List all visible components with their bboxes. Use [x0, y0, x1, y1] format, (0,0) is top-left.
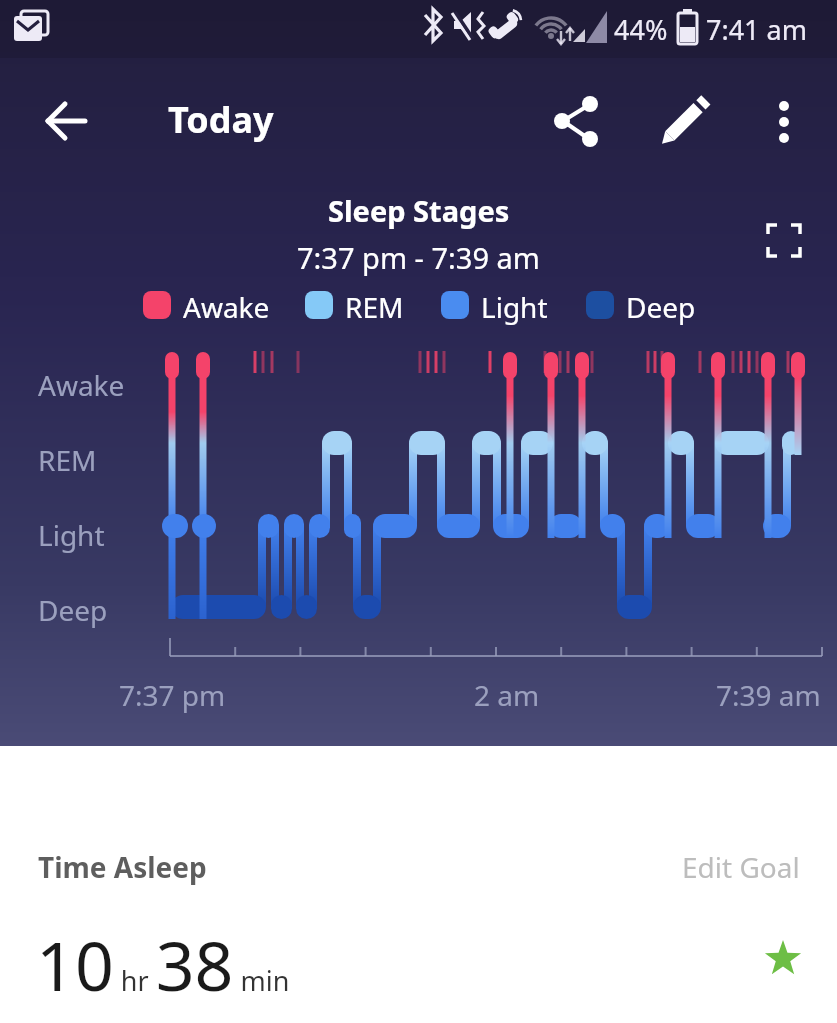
button[interactable] [762, 96, 806, 140]
staticText: Today [168, 95, 274, 144]
staticText: Light [38, 516, 105, 554]
staticText: 44% [614, 11, 668, 48]
staticText: REM [345, 288, 404, 326]
button[interactable] [36, 99, 84, 147]
staticText: 7:37 pm - 7:39 am [297, 238, 540, 277]
button[interactable] [760, 217, 808, 265]
button[interactable]: Edit Goal [540, 848, 800, 886]
staticText: 7:39 am [716, 676, 821, 714]
staticText: Time Asleep [38, 848, 207, 886]
staticText: 7:37 pm [119, 676, 226, 714]
button[interactable] [660, 96, 712, 148]
staticText: Deep [626, 288, 696, 326]
staticText: Deep [38, 591, 108, 629]
button[interactable] [548, 96, 600, 148]
staticText: Edit Goal [682, 848, 800, 886]
staticText: 10 hr 38 min [36, 918, 290, 1011]
staticText: 2 am [474, 676, 540, 714]
staticText: Sleep Stages [328, 191, 510, 230]
staticText: Light [481, 288, 548, 326]
staticText: Awake [38, 366, 125, 404]
staticText: REM [38, 441, 97, 479]
staticText: 7:41 am [706, 11, 807, 48]
staticText: Awake [183, 288, 270, 326]
